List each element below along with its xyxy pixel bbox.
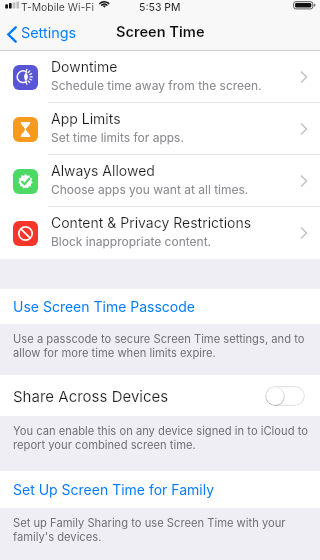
staticText: Set time limits for apps. [51, 130, 184, 145]
staticText: Choose apps you want at all times. [51, 182, 249, 197]
staticText: Block inappropriate content. [51, 234, 212, 249]
staticText: 5:53 PM [139, 1, 181, 14]
staticText: Use Screen Time Passcode [13, 298, 195, 315]
staticText: T-Mobile Wi-Fi [21, 1, 94, 14]
button[interactable]: Settings [0, 24, 85, 44]
staticText: Always Allowed [51, 162, 155, 179]
staticText: Set Up Screen Time for Family [13, 481, 215, 498]
staticText: Use a passcode to secure Screen Time set… [13, 332, 314, 360]
staticText: App Limits [51, 110, 121, 127]
button[interactable]: Downtime [0, 51, 320, 103]
staticText: Schedule time away from the screen. [51, 78, 262, 93]
staticText: You can enable this on any device signed… [13, 424, 314, 452]
button[interactable]: Always Allowed [0, 155, 320, 207]
button[interactable]: Use Screen Time Passcode [0, 289, 320, 324]
staticText: Downtime [51, 58, 118, 75]
button[interactable]: Set Up Screen Time for Family [0, 471, 320, 508]
button[interactable]: Share Across Devices toggle [265, 386, 305, 406]
staticText: Set up Family Sharing to use Screen Time… [13, 516, 314, 544]
button[interactable]: Content & Privacy Restrictions [0, 207, 320, 259]
button[interactable]: App Limits [0, 103, 320, 155]
staticText: Content & Privacy Restrictions [51, 214, 252, 231]
staticText: Screen Time [116, 23, 205, 41]
staticText: Settings [21, 24, 77, 41]
staticText: Share Across Devices [13, 387, 169, 405]
